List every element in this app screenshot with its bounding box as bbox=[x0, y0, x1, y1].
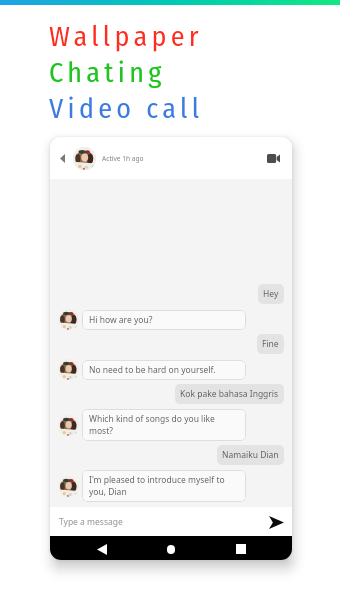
staticText: Hi how are you? bbox=[89, 314, 153, 326]
button[interactable]: Namaiku Dian bbox=[217, 445, 284, 465]
button[interactable]: Kok pake bahasa Inggris bbox=[175, 384, 284, 404]
staticText: Kok pake bahasa Inggris bbox=[180, 388, 279, 400]
button[interactable]: Video call bbox=[263, 148, 283, 168]
button[interactable]: Fine bbox=[257, 334, 284, 354]
button[interactable]: Back bbox=[55, 151, 70, 166]
staticText: Which kind of songs do you like most? bbox=[89, 413, 239, 437]
button[interactable]: Send bbox=[266, 512, 286, 532]
staticText: Video call bbox=[49, 92, 204, 126]
button[interactable]: Home bbox=[159, 537, 183, 560]
button[interactable]: No need to be hard on yourself. bbox=[82, 360, 246, 380]
staticText: Namaiku Dian bbox=[222, 449, 279, 461]
staticText: Chating bbox=[49, 56, 166, 90]
staticText: No need to be hard on yourself. bbox=[89, 364, 216, 376]
button[interactable]: I'm pleased to introduce myself to you, … bbox=[82, 470, 246, 502]
staticText: I'm pleased to introduce myself to you, … bbox=[89, 474, 239, 498]
staticText: Wallpaper bbox=[49, 20, 203, 54]
staticText: Active 1h ago bbox=[102, 154, 144, 163]
button[interactable]: Hi how are you? bbox=[82, 310, 246, 330]
button[interactable]: Hey bbox=[258, 284, 284, 304]
staticText: Hey bbox=[263, 288, 279, 300]
button[interactable]: Back bbox=[90, 537, 114, 560]
staticText: Type a message bbox=[59, 516, 123, 528]
button[interactable]: Which kind of songs do you like most? bbox=[82, 409, 246, 441]
button[interactable]: Recent apps bbox=[229, 537, 253, 560]
staticText: Fine bbox=[262, 338, 279, 350]
